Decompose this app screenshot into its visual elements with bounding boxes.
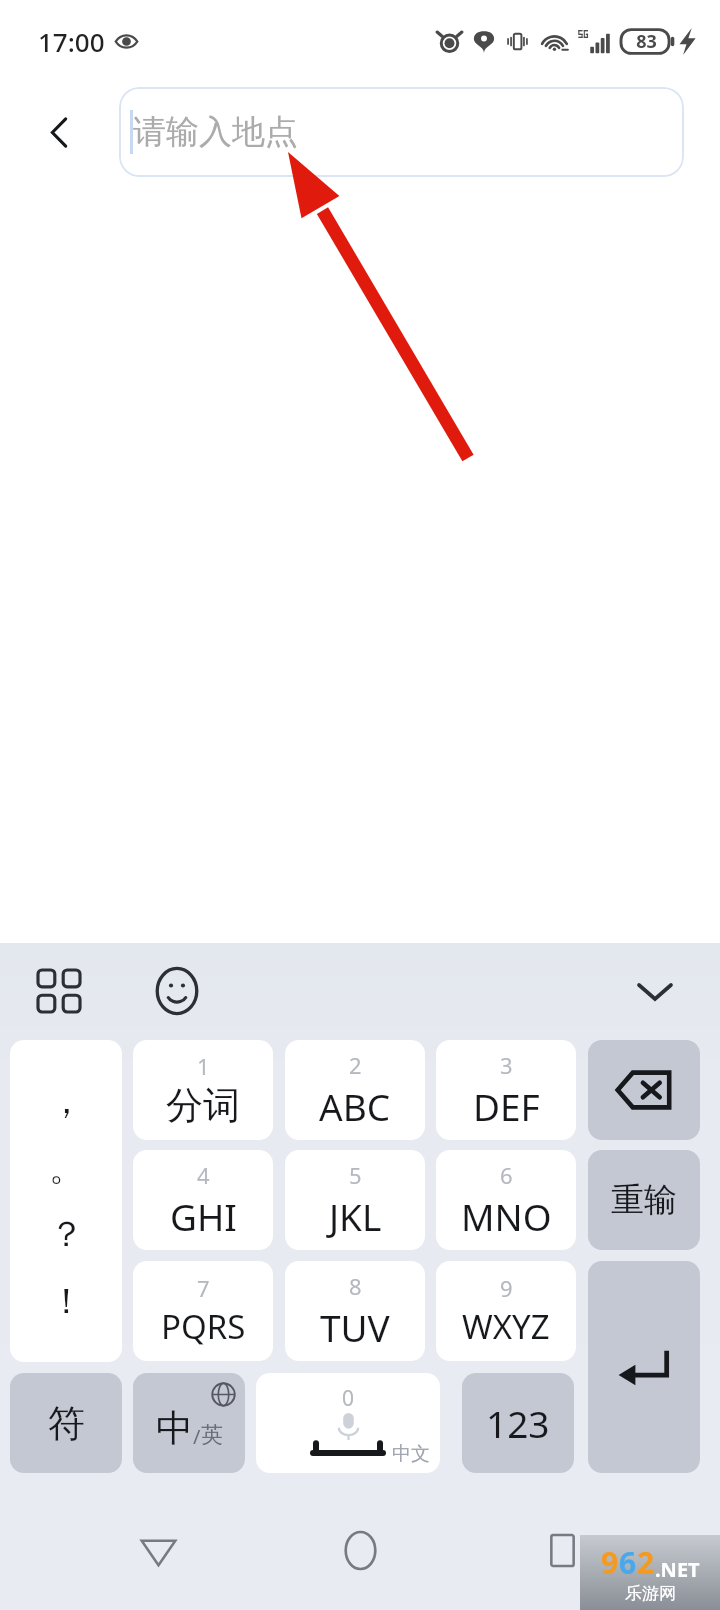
staticText: ？ <box>49 1212 84 1256</box>
button[interactable]: Home <box>316 1506 404 1594</box>
button[interactable]: Emoji <box>142 956 212 1026</box>
button[interactable]: 8 <box>285 1261 425 1361</box>
button[interactable]: Enter <box>588 1261 700 1473</box>
button[interactable]: Hide keyboard <box>620 956 690 1026</box>
button[interactable]: 请输入地点 <box>119 87 684 177</box>
staticText: 2 <box>349 1050 362 1080</box>
button[interactable]: Back <box>114 1506 202 1594</box>
button[interactable]: ， <box>10 1040 122 1362</box>
staticText: 2 <box>637 1542 655 1583</box>
staticText: GHI <box>170 1191 237 1241</box>
staticText: 9 <box>500 1273 513 1303</box>
staticText: DEF <box>473 1081 540 1131</box>
button[interactable]: Back <box>20 93 98 171</box>
button[interactable]: 5 <box>285 1150 425 1250</box>
button[interactable]: 重输 <box>588 1150 700 1250</box>
staticText: 123 <box>486 1398 550 1448</box>
button[interactable]: Keyboard layouts <box>24 956 94 1026</box>
staticText: MNO <box>461 1191 552 1241</box>
staticText: 6 <box>500 1160 513 1190</box>
staticText: ， <box>49 1079 84 1123</box>
staticText: .NET <box>655 1556 700 1583</box>
staticText: JKL <box>329 1191 382 1241</box>
staticText: 中 <box>156 1405 193 1452</box>
staticText: 1 <box>197 1051 210 1081</box>
button[interactable]: 6 <box>436 1150 576 1250</box>
staticText: 分词 <box>166 1082 240 1129</box>
staticText: 8 <box>349 1271 362 1301</box>
staticText: 3 <box>500 1050 513 1080</box>
staticText: 4 <box>197 1160 210 1190</box>
staticText: 0 <box>342 1384 355 1413</box>
button[interactable]: 符 <box>10 1373 122 1473</box>
staticText: 。 <box>49 1146 84 1190</box>
staticText: 重输 <box>611 1179 677 1221</box>
staticText: 英 <box>201 1421 223 1449</box>
button[interactable]: 9 <box>436 1261 576 1361</box>
staticText: 9 <box>601 1542 619 1583</box>
button[interactable]: 7 <box>133 1261 273 1361</box>
staticText: / <box>193 1423 201 1450</box>
button[interactable]: 123 <box>462 1373 574 1473</box>
staticText: 6 <box>619 1542 637 1583</box>
staticText: 请输入地点 <box>133 111 298 153</box>
staticText: 83 <box>636 29 657 54</box>
staticText: 中文 <box>392 1442 430 1466</box>
staticText: 乐游网 <box>625 1583 676 1604</box>
button[interactable]: 3 <box>436 1040 576 1140</box>
staticText: ！ <box>49 1279 84 1323</box>
button[interactable]: 中 <box>133 1373 245 1473</box>
staticText: 5 <box>349 1160 362 1190</box>
button[interactable]: 2 <box>285 1040 425 1140</box>
staticText: 符 <box>48 1400 85 1447</box>
staticText: 7 <box>197 1273 210 1303</box>
staticText: ABC <box>319 1081 391 1131</box>
button[interactable]: Backspace <box>588 1040 700 1140</box>
button[interactable]: Recents <box>518 1506 606 1594</box>
staticText: WXYZ <box>462 1304 550 1349</box>
button[interactable]: Space <box>256 1373 440 1473</box>
staticText: TUV <box>320 1302 390 1352</box>
button[interactable]: 1 <box>133 1040 273 1140</box>
button[interactable]: 4 <box>133 1150 273 1250</box>
staticText: PQRS <box>161 1304 246 1349</box>
staticText: 17:00 <box>38 24 105 59</box>
